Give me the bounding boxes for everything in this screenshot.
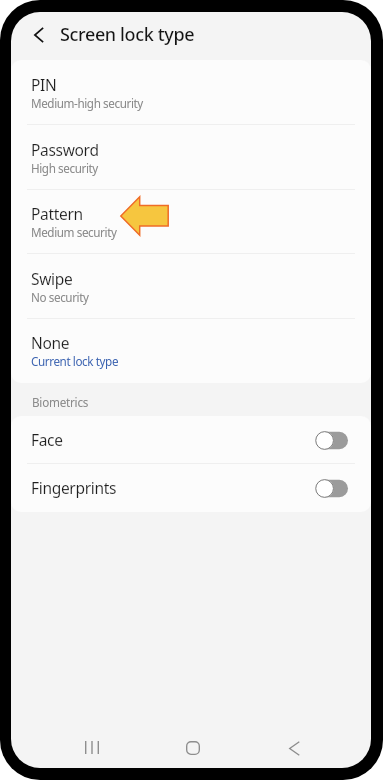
button[interactable]: Fingerprints switch, off bbox=[315, 479, 348, 498]
button[interactable]: Pattern bbox=[11, 189, 371, 254]
staticText: Pattern bbox=[31, 203, 83, 224]
staticText: Swipe bbox=[31, 268, 73, 289]
staticText: None bbox=[31, 332, 70, 353]
button[interactable]: Navigate up bbox=[16, 13, 61, 57]
staticText: Fingerprints bbox=[31, 477, 117, 498]
button[interactable]: Swipe bbox=[11, 254, 371, 319]
staticText: Current lock type bbox=[31, 353, 119, 369]
button[interactable]: Home bbox=[170, 727, 216, 768]
button[interactable]: Face switch, off bbox=[315, 431, 348, 450]
staticText: PIN bbox=[31, 74, 57, 95]
staticText: No security bbox=[31, 289, 89, 305]
staticText: Screen lock type bbox=[60, 22, 195, 47]
staticText: Biometrics bbox=[32, 394, 89, 410]
staticText: Medium-high security bbox=[31, 95, 143, 111]
button[interactable]: Recent apps bbox=[69, 727, 115, 768]
button[interactable]: Back bbox=[271, 728, 317, 768]
staticText: Face bbox=[31, 429, 63, 450]
button[interactable]: Password bbox=[11, 125, 371, 190]
staticText: High security bbox=[31, 160, 98, 176]
button[interactable]: Fingerprints bbox=[11, 464, 371, 512]
button[interactable]: Face bbox=[11, 416, 371, 464]
staticText: Password bbox=[31, 139, 99, 160]
button[interactable]: PIN bbox=[11, 60, 371, 125]
staticText: Medium security bbox=[31, 224, 117, 240]
button[interactable]: None bbox=[11, 318, 371, 383]
